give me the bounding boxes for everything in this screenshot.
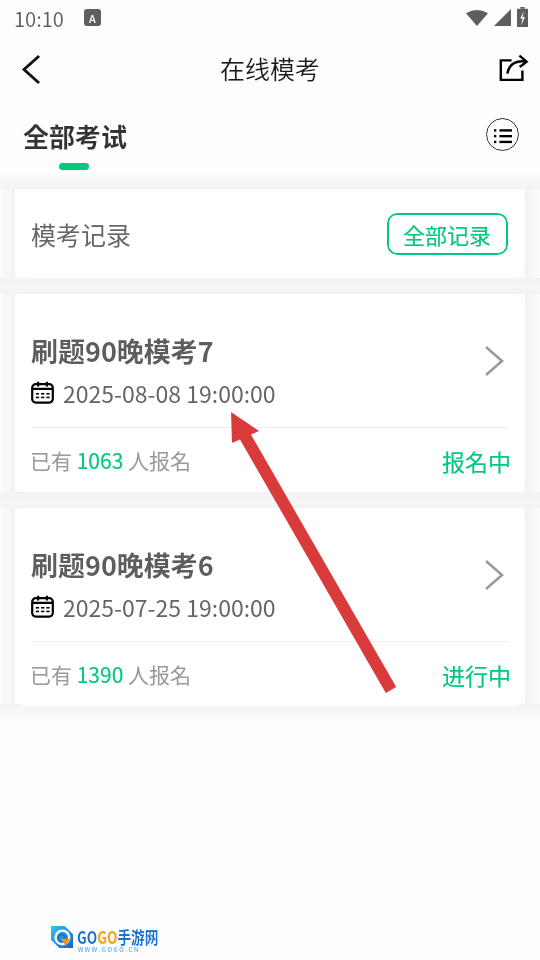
button[interactable]: 刷题90晚模考7 bbox=[15, 294, 525, 492]
button[interactable]: 刷题90晚模考6 bbox=[15, 508, 525, 706]
staticText: WWW.GOGO.CN bbox=[78, 945, 140, 954]
staticText: 刷题90晚模考7 bbox=[31, 331, 214, 370]
staticText: 报名中 bbox=[442, 444, 511, 477]
staticText: 进行中 bbox=[442, 658, 511, 691]
staticText: GOGO手游网 bbox=[77, 924, 159, 949]
staticText: 2025-07-25 19:00:00 bbox=[63, 590, 276, 623]
button[interactable]: Share bbox=[488, 41, 540, 93]
button[interactable]: 全部记录 bbox=[387, 213, 508, 255]
staticText: 10:10 bbox=[14, 4, 64, 33]
staticText: 全部记录 bbox=[403, 218, 492, 250]
button[interactable]: Back bbox=[4, 42, 58, 96]
staticText: 刷题90晚模考6 bbox=[31, 545, 214, 584]
staticText: 在线模考 bbox=[220, 50, 321, 86]
staticText: 全部考试 bbox=[23, 117, 128, 155]
staticText: 已有 1390 人报名 bbox=[30, 659, 192, 689]
button[interactable]: 模考记录 bbox=[15, 189, 525, 278]
staticText: 已有 1063 人报名 bbox=[30, 445, 192, 475]
staticText: 模考记录 bbox=[31, 216, 132, 252]
staticText: A bbox=[89, 10, 96, 26]
button[interactable]: Filter list bbox=[486, 118, 519, 151]
staticText: 2025-08-08 19:00:00 bbox=[63, 376, 276, 409]
